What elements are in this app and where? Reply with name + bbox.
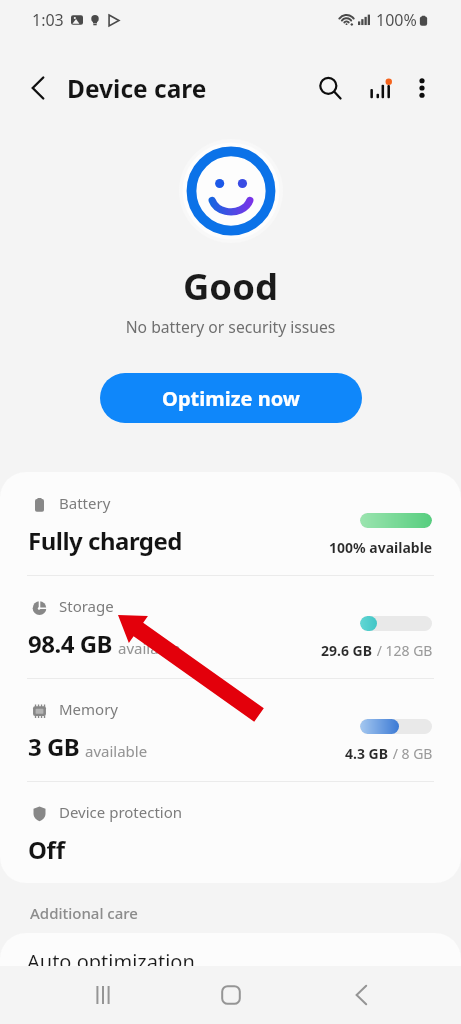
staticText: Auto optimization (27, 948, 195, 975)
button[interactable]: Home (209, 973, 253, 1017)
button[interactable]: Optimize now (100, 373, 362, 423)
button[interactable]: More options (400, 66, 444, 110)
button[interactable]: Memory (0, 678, 461, 781)
staticText: 3 GB (28, 730, 80, 763)
staticText: Device protection (59, 802, 183, 822)
staticText: / 8 GB (389, 744, 433, 763)
staticText: 100% (376, 9, 417, 31)
button[interactable]: Diagnostics (358, 69, 402, 113)
staticText: Storage (59, 596, 114, 616)
button[interactable]: Device protection (0, 781, 461, 883)
button[interactable]: Storage (0, 575, 461, 678)
button[interactable]: Battery (0, 472, 461, 575)
staticText: 1:03 (32, 9, 64, 31)
button[interactable]: Navigate up (16, 66, 60, 110)
staticText: Memory (59, 699, 119, 719)
staticText: / 128 GB (373, 641, 433, 660)
staticText: 4.3 GB (345, 744, 389, 763)
staticText: Device care (67, 72, 207, 105)
staticText: 98.4 GB (28, 627, 113, 660)
staticText: Battery (59, 493, 111, 513)
staticText: No battery or security issues (0, 316, 461, 337)
staticText: 29.6 GB (321, 641, 373, 660)
button[interactable]: Recent apps (81, 973, 125, 1017)
button[interactable]: Back (339, 973, 383, 1017)
staticText: Fully charged (28, 524, 183, 557)
button[interactable]: Auto optimization (0, 933, 461, 993)
staticText: Off (28, 833, 65, 866)
staticText: 100% available (329, 538, 433, 557)
staticText: Good (0, 261, 461, 311)
button[interactable]: Search (308, 66, 352, 110)
staticText: Additional care (30, 903, 138, 923)
staticText: Optimize now (162, 385, 300, 412)
staticText: available (118, 638, 181, 658)
staticText: available (85, 741, 148, 761)
